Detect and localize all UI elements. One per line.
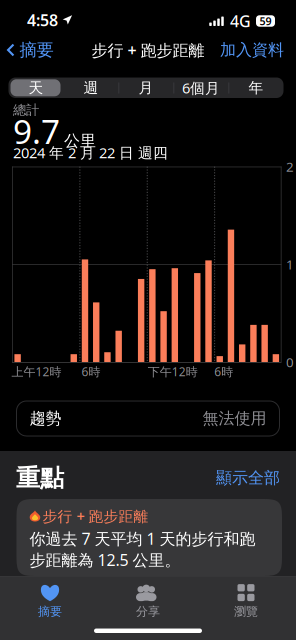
staticText: 總計 (13, 102, 39, 118)
button[interactable]: 步行 + 跑步距離 (16, 499, 282, 576)
staticText: 步行 + 跑步距離 (91, 39, 204, 61)
button[interactable]: 加入資料 (220, 38, 296, 62)
staticText: 重點 (16, 463, 64, 493)
button[interactable]: 週 (63, 77, 118, 98)
button[interactable]: 顯示全部 (216, 466, 280, 490)
button[interactable]: 摘要 (0, 38, 59, 62)
staticText: 瀏覽 (234, 604, 258, 619)
staticText: 加入資料 (220, 40, 284, 60)
staticText: 週 (83, 79, 98, 97)
staticText: 摘要 (19, 39, 53, 61)
staticText: 0 (286, 353, 294, 371)
staticText: 1 (286, 255, 294, 273)
staticText: 步行 + 跑步距離 (42, 506, 148, 526)
staticText: 6時 (81, 364, 100, 379)
button[interactable]: 6個月 (173, 77, 228, 98)
button[interactable]: 分享 (99, 580, 197, 622)
button[interactable]: 年 (228, 77, 283, 98)
staticText: 趨勢 (29, 409, 61, 428)
staticText: 摘要 (38, 604, 62, 619)
button[interactable]: 天 (8, 77, 63, 98)
button[interactable]: 瀏覽 (197, 580, 295, 622)
staticText: 4:58 (27, 9, 58, 31)
staticText: 公里 (64, 131, 96, 151)
button[interactable]: 趨勢 (16, 401, 279, 436)
staticText: 9.7 (13, 109, 60, 153)
staticText: 6個月 (182, 78, 220, 97)
staticText: 顯示全部 (216, 468, 280, 488)
staticText: 分享 (136, 604, 160, 619)
staticText: 4G (230, 10, 251, 32)
staticText: 年 (248, 79, 263, 97)
staticText: 6時 (214, 364, 233, 379)
staticText: 上午12時 (11, 364, 61, 379)
staticText: 2024 年 2 月 22 日 週四 (13, 143, 168, 162)
staticText: 月 (138, 79, 153, 97)
staticText: 你過去 7 天平均 1 天的步行和跑步距離為 12.5 公里。 (29, 528, 255, 570)
staticText: 無法使用 (202, 409, 266, 428)
button[interactable]: 摘要 (1, 580, 99, 622)
staticText: 2 (286, 158, 294, 175)
staticText: 天 (28, 79, 43, 97)
staticText: 下午12時 (148, 364, 198, 379)
staticText: 59 (259, 14, 271, 28)
button[interactable]: 月 (118, 77, 173, 98)
